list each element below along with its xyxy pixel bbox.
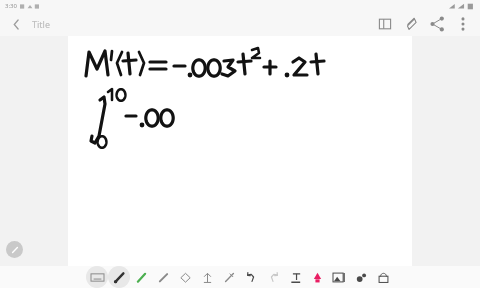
button[interactable]: Select	[174, 266, 196, 288]
button[interactable]: Back	[4, 12, 28, 36]
button[interactable]: Eraser	[152, 266, 174, 288]
button[interactable]: More options	[450, 12, 476, 36]
button[interactable]: Pen	[108, 266, 130, 288]
button[interactable]: Insert text	[284, 266, 306, 288]
button[interactable]: Share	[424, 12, 450, 36]
button[interactable]: View mode	[372, 12, 398, 36]
button[interactable]: Attach	[398, 12, 424, 36]
button[interactable]: Text mode	[86, 266, 108, 288]
button[interactable]: Pen settings	[6, 241, 23, 258]
staticText: Title	[32, 18, 50, 30]
button[interactable]: Highlighter	[130, 266, 152, 288]
button[interactable]: Redo	[262, 266, 284, 288]
button[interactable]: Stickers	[350, 266, 372, 288]
button[interactable]: Lock	[372, 266, 394, 288]
button[interactable]: Convert	[218, 266, 240, 288]
button[interactable]: Shape	[196, 266, 218, 288]
button[interactable]: Insert image	[328, 266, 350, 288]
staticText: 3:30	[5, 2, 17, 10]
button[interactable]: Marker	[306, 266, 328, 288]
button[interactable]: Undo	[240, 266, 262, 288]
